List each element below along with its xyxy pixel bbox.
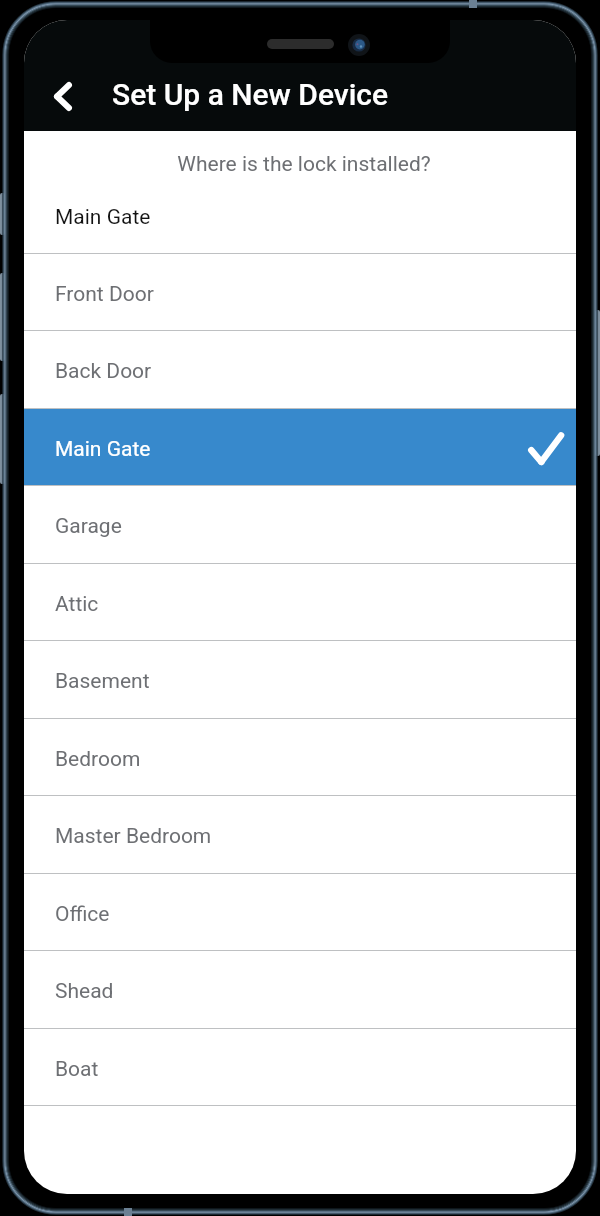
staticText: Bedroom bbox=[55, 747, 141, 772]
staticText: Office bbox=[55, 902, 110, 927]
staticText: Shead bbox=[55, 979, 114, 1004]
button[interactable]: Main Gate bbox=[24, 409, 576, 485]
staticText: Back Door bbox=[55, 359, 152, 384]
staticText: Master Bedroom bbox=[55, 824, 212, 849]
button[interactable]: Garage bbox=[24, 486, 576, 563]
staticText: Main Gate bbox=[55, 437, 151, 462]
button[interactable]: Master Bedroom bbox=[24, 796, 576, 873]
button[interactable]: Bedroom bbox=[24, 719, 576, 795]
button[interactable]: Office bbox=[24, 874, 576, 950]
staticText: Boat bbox=[55, 1057, 99, 1082]
staticText: Garage bbox=[55, 514, 122, 539]
button[interactable]: Front Door bbox=[24, 254, 576, 330]
button[interactable]: Shead bbox=[24, 951, 576, 1028]
button[interactable]: Back Door bbox=[24, 331, 576, 408]
staticText: Attic bbox=[55, 592, 99, 617]
button[interactable]: Back bbox=[37, 70, 89, 122]
button[interactable]: Attic bbox=[24, 564, 576, 640]
staticText: Basement bbox=[55, 669, 150, 694]
staticText: Set Up a New Device bbox=[112, 77, 389, 112]
button[interactable]: Basement bbox=[24, 641, 576, 718]
staticText: Main Gate bbox=[55, 205, 151, 230]
staticText: Front Door bbox=[55, 282, 154, 307]
staticText: Where is the lock installed? bbox=[28, 152, 576, 177]
button[interactable]: Boat bbox=[24, 1029, 576, 1105]
